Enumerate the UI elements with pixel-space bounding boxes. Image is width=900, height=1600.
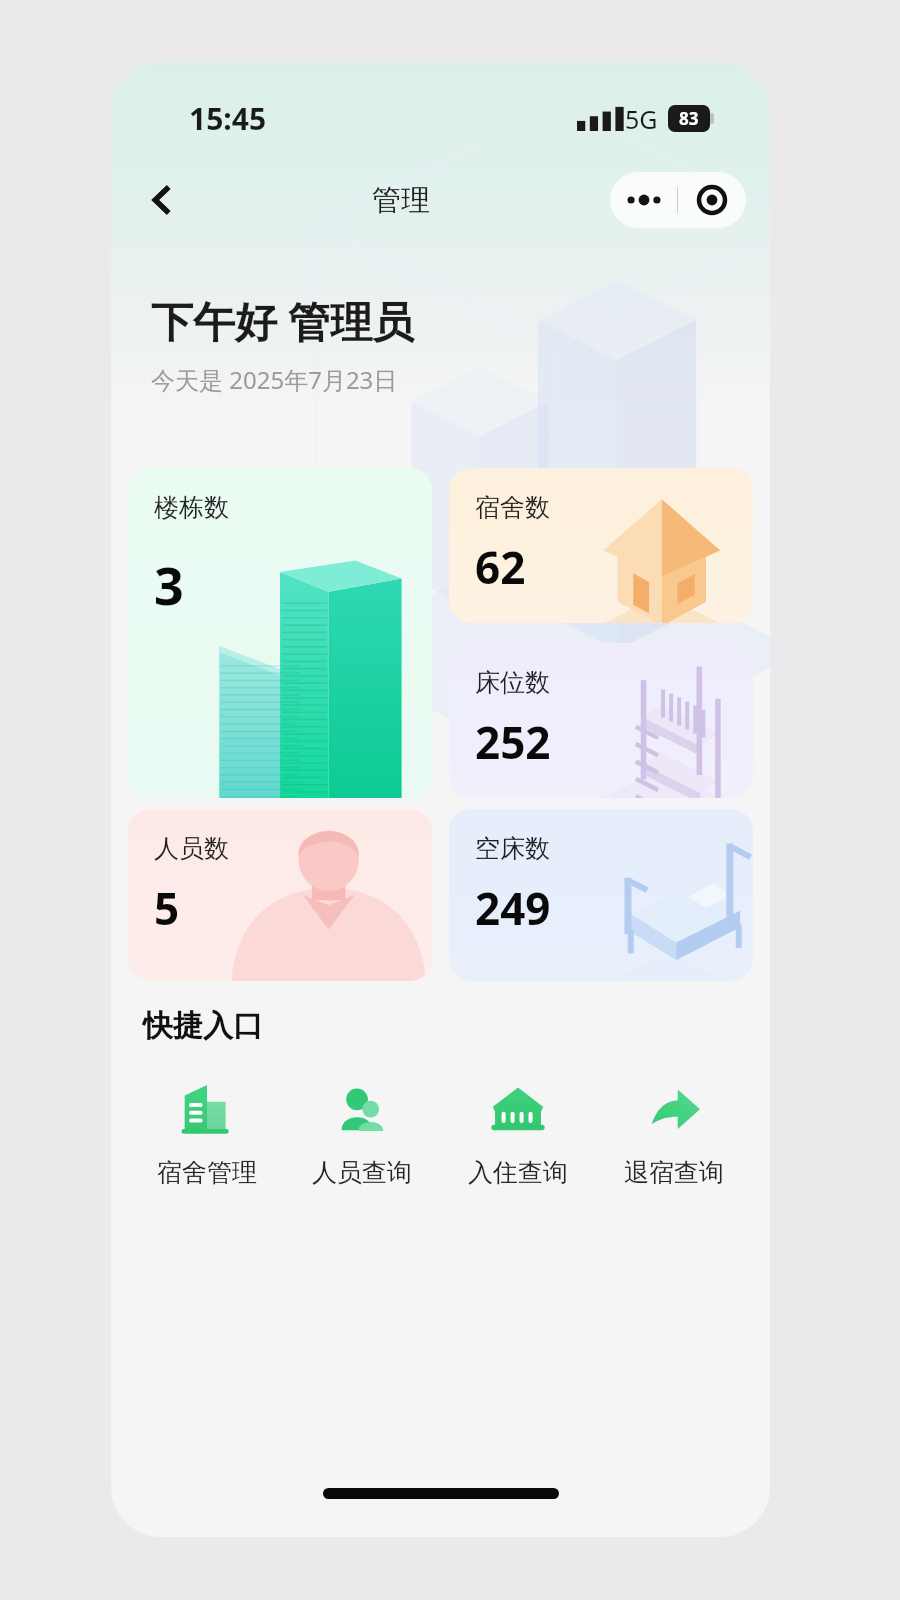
staticText: 5 xyxy=(154,878,180,938)
staticText: 退宿查询 xyxy=(624,1157,724,1188)
staticText: 下午好 管理员 xyxy=(151,292,414,349)
staticText: 床位数 xyxy=(475,667,550,698)
button[interactable]: 床位数 xyxy=(449,643,753,798)
staticText: 管理 xyxy=(372,182,430,219)
button[interactable]: 入住查询 xyxy=(440,1071,596,1194)
staticText: 5G xyxy=(625,102,658,136)
button[interactable]: More xyxy=(610,172,677,228)
staticText: 今天是 2025年7月23日 xyxy=(151,363,398,396)
staticText: 人员查询 xyxy=(312,1157,412,1188)
staticText: 249 xyxy=(475,878,551,938)
button[interactable]: 宿舍数 xyxy=(449,468,753,623)
staticText: 83 xyxy=(679,107,699,130)
button[interactable]: 人员数 xyxy=(128,809,432,981)
staticText: 宿舍管理 xyxy=(157,1157,257,1188)
button[interactable]: 宿舍管理 xyxy=(129,1071,284,1194)
button[interactable]: 空床数 xyxy=(449,809,753,981)
staticText: 15:45 xyxy=(189,98,267,139)
staticText: 62 xyxy=(475,537,526,597)
staticText: 快捷入口 xyxy=(143,1007,263,1045)
staticText: 人员数 xyxy=(154,833,229,864)
button[interactable]: 人员查询 xyxy=(284,1071,440,1194)
button[interactable]: 楼栋数 xyxy=(128,468,432,798)
staticText: 252 xyxy=(475,712,551,772)
staticText: 空床数 xyxy=(475,833,550,864)
button[interactable]: Close xyxy=(678,172,746,228)
staticText: 3 xyxy=(154,549,184,620)
staticText: 宿舍数 xyxy=(475,492,550,523)
staticText: 楼栋数 xyxy=(154,492,229,523)
staticText: 入住查询 xyxy=(468,1157,568,1188)
button[interactable]: 退宿查询 xyxy=(596,1071,752,1194)
button[interactable]: Back xyxy=(133,170,193,230)
